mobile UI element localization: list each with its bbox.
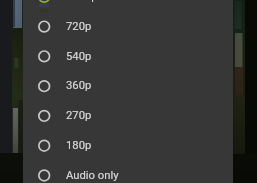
staticText: Audio only [66, 169, 119, 182]
button[interactable]: 180p [23, 131, 233, 161]
button[interactable]: 270p [23, 101, 233, 131]
staticText: 180p [66, 139, 92, 152]
staticText: 270p [66, 109, 92, 122]
button[interactable]: 360p [23, 71, 233, 101]
button[interactable]: Audio only [23, 161, 233, 183]
staticText: 360p [66, 79, 92, 92]
staticText: 540p [66, 50, 92, 63]
button[interactable]: 720p [23, 12, 233, 42]
button[interactable]: 540p [23, 42, 233, 72]
staticText: 720p [66, 20, 92, 33]
staticText: 1080p [66, 0, 98, 3]
button[interactable]: 1080p [23, 0, 233, 12]
